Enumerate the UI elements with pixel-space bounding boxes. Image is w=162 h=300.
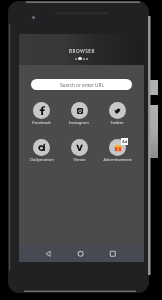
button[interactable]: Instagram <box>60 102 98 126</box>
button[interactable]: Twitter <box>98 102 136 126</box>
button[interactable]: Ad <box>98 139 136 163</box>
staticText: BROWSER <box>69 48 95 54</box>
staticText: Instagram <box>69 120 89 126</box>
staticText: Dailymotion <box>30 157 54 163</box>
button[interactable]: Search or enter URL <box>31 79 132 90</box>
staticText: Ad <box>122 139 128 144</box>
button[interactable]: Dailymotion <box>23 139 60 163</box>
staticText: Facebook <box>32 120 51 126</box>
staticText: Advertisement <box>103 157 132 163</box>
button[interactable]: Back <box>19 246 60 262</box>
staticText: Search or enter URL <box>60 82 104 88</box>
staticText: Twitter <box>110 120 124 126</box>
button[interactable]: Vimeo <box>60 139 98 163</box>
button[interactable]: Home <box>60 246 102 262</box>
staticText: Vimeo <box>73 157 86 163</box>
button[interactable]: Recent apps <box>102 246 144 262</box>
button[interactable]: Facebook <box>23 102 60 126</box>
